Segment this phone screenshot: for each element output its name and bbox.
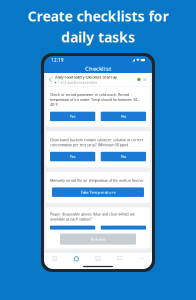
staticText: Daily Food Safety Checklist Startup	[55, 74, 117, 80]
button[interactable]: Information	[143, 78, 146, 81]
staticText: Clean towel buckets contain sanitizer so…	[50, 137, 143, 147]
button[interactable]: Yes	[50, 152, 95, 161]
button[interactable]: Yes	[50, 112, 95, 121]
staticText: Manually record the air temperature of t…	[50, 178, 144, 183]
staticText: Submit	[90, 236, 105, 242]
button[interactable]: Yes	[50, 226, 95, 230]
staticText: 1 of 4 questions available	[58, 80, 98, 85]
button[interactable]: Home	[66, 253, 87, 264]
staticText: No	[121, 114, 126, 119]
button[interactable]: Back	[49, 77, 52, 82]
staticText: No	[121, 154, 126, 159]
staticText: 12:19	[51, 57, 64, 63]
staticText: Checklist	[85, 64, 111, 72]
staticText: Yes	[70, 154, 76, 159]
button[interactable]: Checklists	[44, 253, 66, 264]
button[interactable]: Take Temperature	[52, 187, 144, 197]
staticText: Create checklists for	[27, 6, 168, 25]
button[interactable]: No	[101, 152, 146, 161]
button[interactable]: Submit	[60, 234, 136, 245]
button[interactable]: No	[101, 226, 146, 230]
staticText: Take Temperature	[80, 189, 115, 195]
button[interactable]: More	[130, 253, 152, 264]
staticText: Proper disposable gloves (blue and clear…	[50, 211, 135, 222]
button[interactable]: Messages	[109, 253, 130, 264]
staticText: daily tasks	[61, 27, 135, 47]
staticText: Check or record parameter in cold-wash. …	[50, 92, 139, 107]
button[interactable]: Completed	[137, 78, 141, 81]
staticText: Yes	[70, 114, 76, 119]
button[interactable]: Reports	[87, 253, 109, 264]
button[interactable]: No	[101, 112, 146, 121]
